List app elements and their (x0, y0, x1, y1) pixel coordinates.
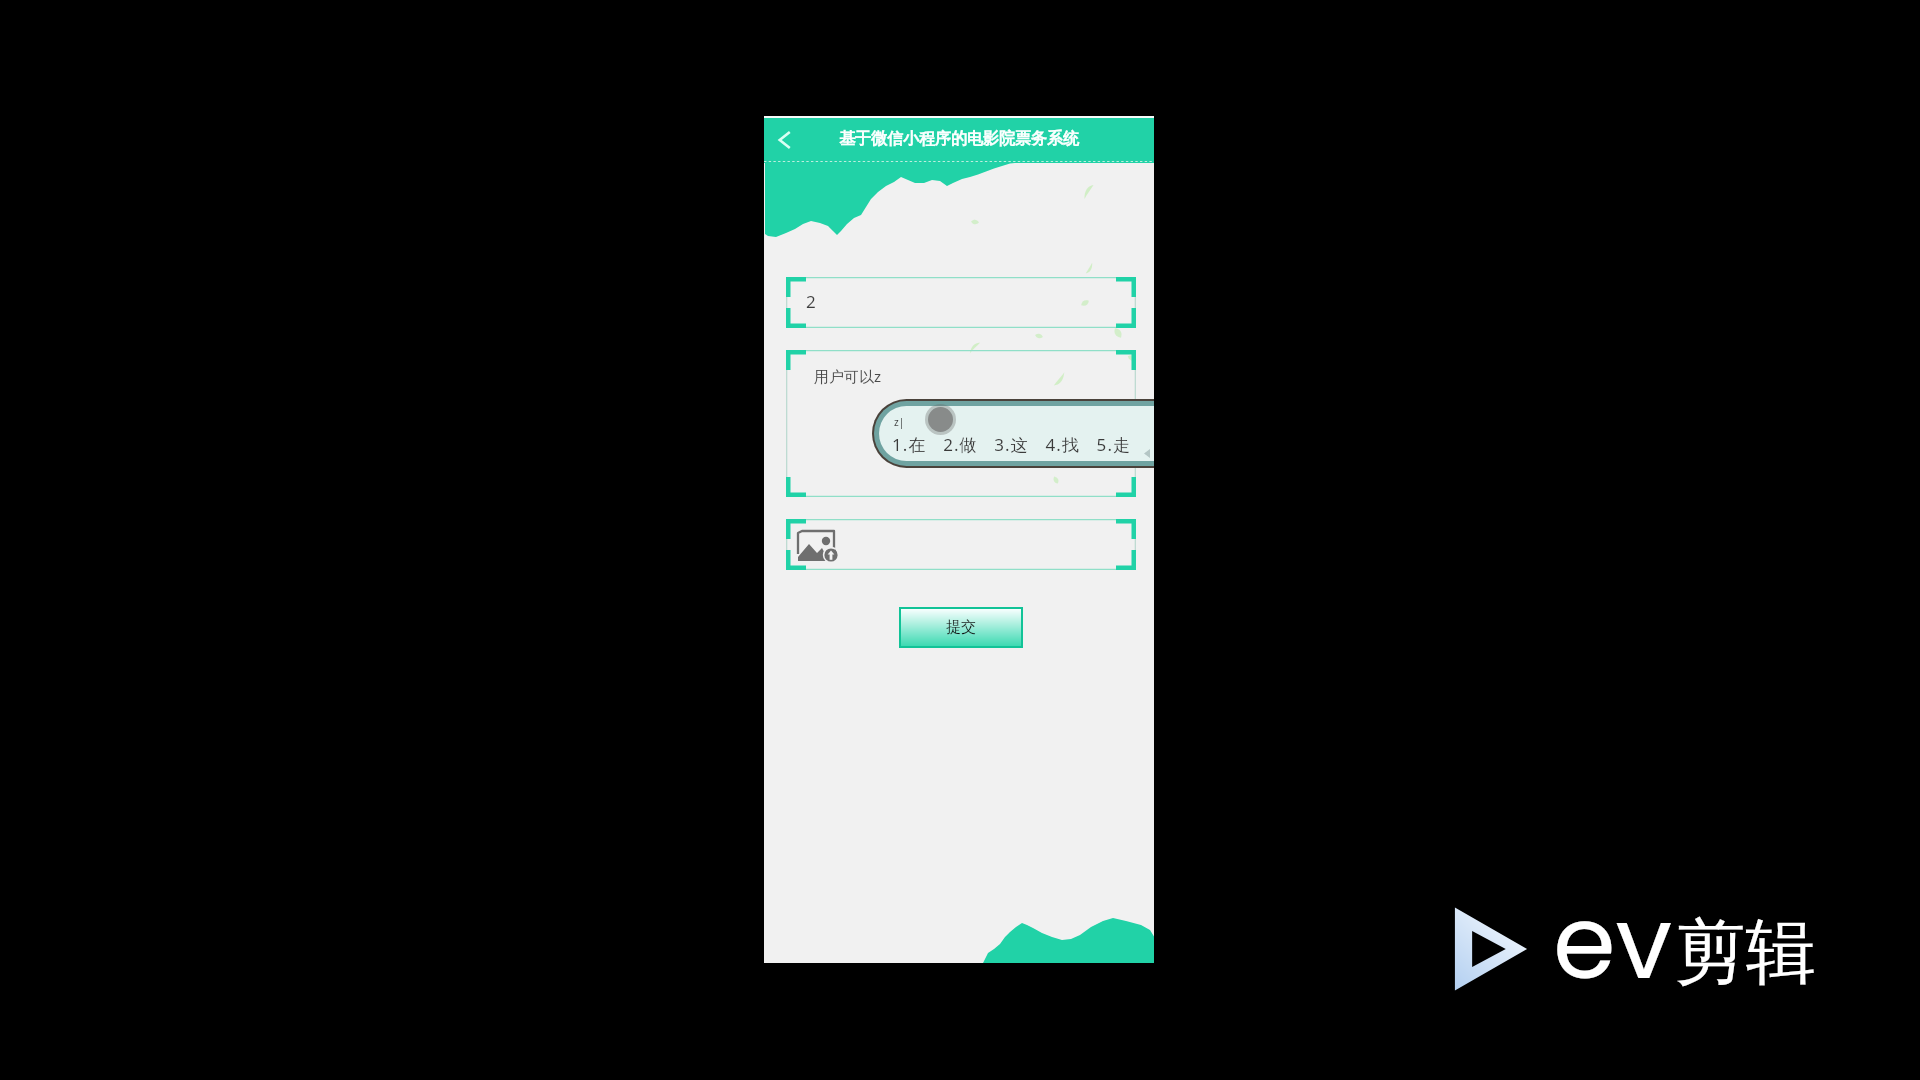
staticText: 提交 (946, 618, 976, 637)
staticText: ev (1553, 872, 1673, 1013)
button[interactable]: Upload image (786, 519, 1136, 570)
staticText: 基于微信小程序的电影院票务系统 (839, 129, 1079, 149)
button[interactable]: z| (879, 406, 1154, 461)
button[interactable]: Title field (786, 277, 1136, 328)
staticText: z| (894, 415, 905, 429)
button[interactable]: Back (769, 124, 801, 156)
staticText: 剪辑 (1675, 908, 1816, 997)
staticText: 1.在 2.做 3.这 4.找 5.走 (892, 433, 1132, 456)
staticText: 2 (806, 290, 816, 313)
button[interactable]: Content field (786, 350, 1136, 497)
staticText: 用户可以z (814, 366, 882, 386)
button[interactable]: 提交 (901, 609, 1021, 646)
